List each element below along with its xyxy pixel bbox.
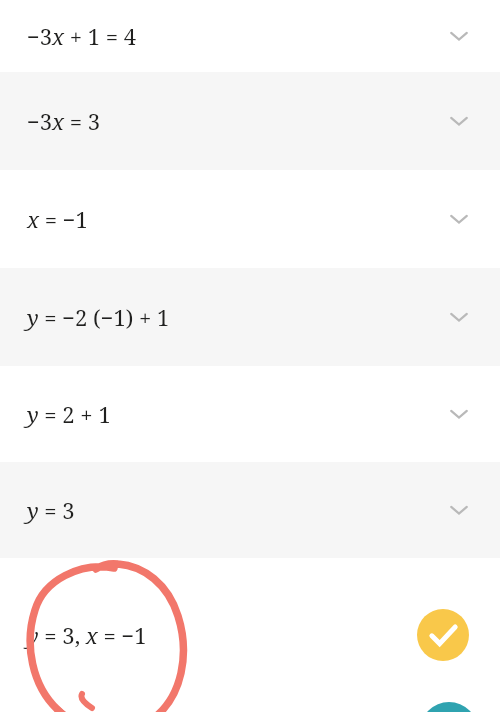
button[interactable]: New question — [420, 702, 478, 712]
button[interactable]: Expand step — [446, 108, 472, 134]
staticText: −3x + 1 = 4 — [27, 21, 137, 51]
button[interactable]: Expand step — [446, 206, 472, 232]
staticText: y = 3, x = −1 — [27, 620, 147, 650]
staticText: y = 2 + 1 — [27, 399, 111, 429]
staticText: y = 3 — [27, 495, 75, 525]
staticText: x = −1 — [27, 204, 88, 234]
button[interactable]: −3x + 1 = 4 — [0, 0, 500, 72]
button[interactable]: Expand step — [446, 401, 472, 427]
button[interactable]: y = 3 — [0, 462, 500, 558]
staticText: y = −2 (−1) + 1 — [27, 302, 170, 332]
button[interactable]: Correct answer — [417, 609, 469, 661]
button[interactable]: x = −1 — [0, 170, 500, 268]
button[interactable]: Expand step — [446, 23, 472, 49]
button[interactable]: Expand step — [446, 304, 472, 330]
button[interactable]: Expand step — [446, 497, 472, 523]
button[interactable]: y = 3, x = −1 — [0, 558, 500, 712]
staticText: −3x = 3 — [27, 106, 101, 136]
button[interactable]: y = −2 (−1) + 1 — [0, 268, 500, 366]
button[interactable]: y = 2 + 1 — [0, 366, 500, 462]
button[interactable]: −3x = 3 — [0, 72, 500, 170]
